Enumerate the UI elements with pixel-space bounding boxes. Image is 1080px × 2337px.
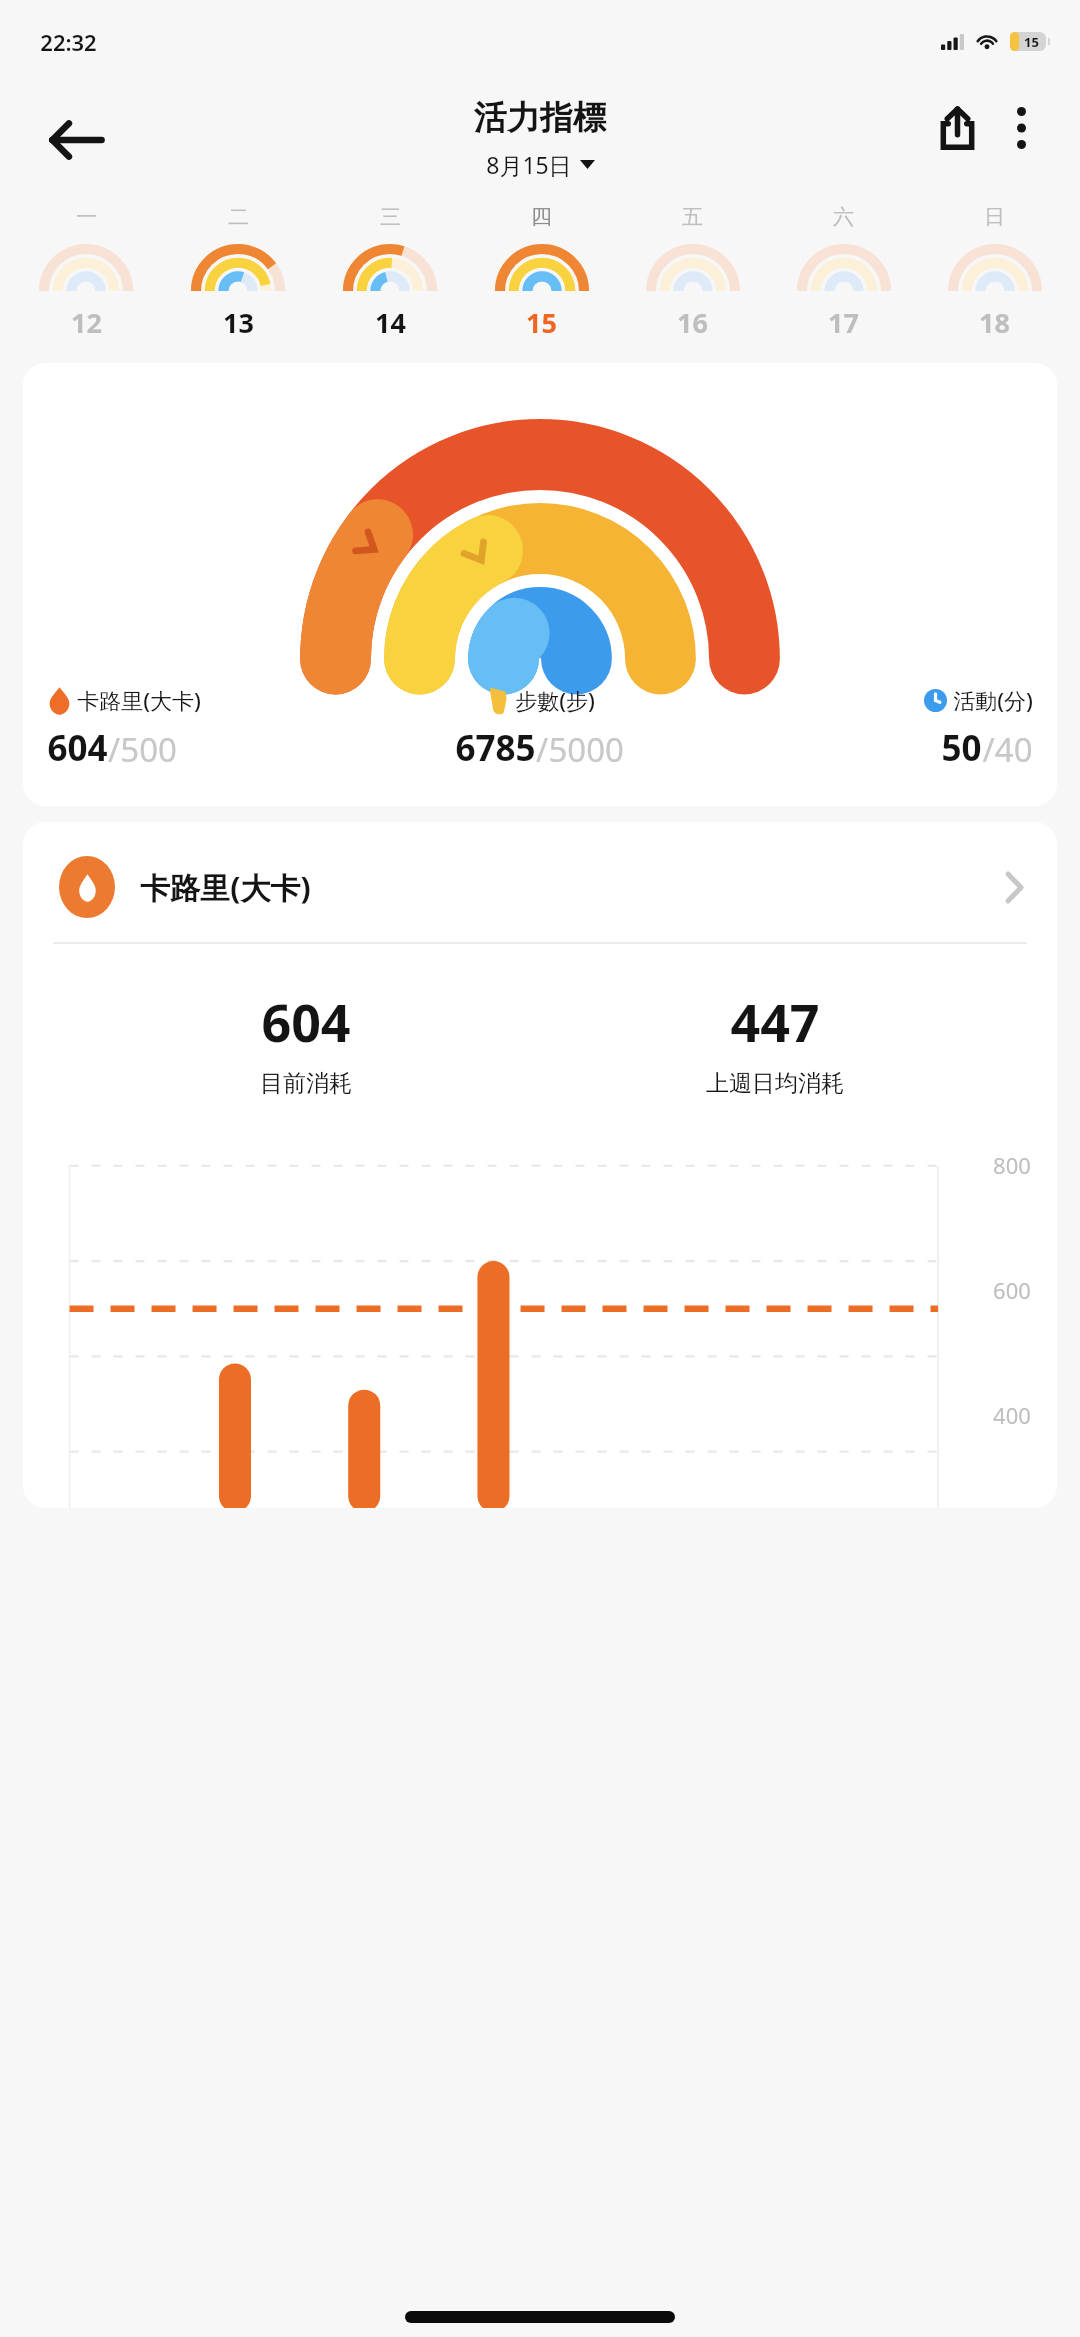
staticText: /40 <box>982 727 1033 772</box>
staticText: 800 <box>993 1150 1031 1180</box>
staticText: 目前消耗 <box>260 1069 352 1098</box>
staticText: 14 <box>375 304 406 341</box>
staticText: 活動(分) <box>953 685 1033 715</box>
button[interactable]: 四 <box>466 204 617 341</box>
staticText: 卡路里(大卡) <box>77 685 201 715</box>
button[interactable]: 三 <box>314 204 466 341</box>
staticText: 400 <box>993 1400 1031 1430</box>
button[interactable]: More options <box>990 97 1052 159</box>
staticText: 活力指標 <box>474 97 606 139</box>
staticText: 15 <box>526 304 557 341</box>
button[interactable]: 卡路里(大卡) <box>23 363 1057 806</box>
staticText: 一 <box>76 204 97 230</box>
staticText: 447 <box>730 986 820 1057</box>
staticText: 16 <box>677 304 708 341</box>
button[interactable]: 二 <box>162 204 314 341</box>
staticText: 604 <box>261 986 351 1057</box>
staticText: 15 <box>1024 33 1039 51</box>
button[interactable]: 一 <box>10 204 162 341</box>
staticText: 四 <box>531 204 552 230</box>
staticText: 18 <box>979 304 1010 341</box>
staticText: /500 <box>108 727 177 772</box>
staticText: 上週日均消耗 <box>706 1069 844 1098</box>
button[interactable]: 五 <box>617 204 768 341</box>
staticText: 卡路里(大卡) <box>140 867 311 908</box>
staticText: /5000 <box>536 727 624 772</box>
button[interactable]: Share <box>924 95 990 161</box>
staticText: 六 <box>833 204 854 230</box>
button[interactable]: 8月15日 <box>486 149 595 180</box>
staticText: 12 <box>71 304 102 341</box>
staticText: 三 <box>380 204 401 230</box>
staticText: 22:32 <box>40 27 97 57</box>
staticText: 日 <box>984 204 1005 230</box>
staticText: 17 <box>828 304 859 341</box>
staticText: 二 <box>228 204 249 230</box>
staticText: 步數(步) <box>515 685 595 715</box>
staticText: 50 <box>941 724 982 772</box>
staticText: 13 <box>223 304 254 341</box>
button[interactable]: 日 <box>919 204 1070 341</box>
button[interactable]: 六 <box>768 204 919 341</box>
staticText: 6785 <box>455 724 536 772</box>
staticText: 五 <box>682 204 703 230</box>
staticText: 604 <box>47 724 108 772</box>
staticText: 600 <box>993 1275 1031 1305</box>
button[interactable]: Back <box>44 108 108 172</box>
staticText: 8月15日 <box>486 149 572 180</box>
button[interactable]: 卡路里(大卡) <box>23 822 1057 942</box>
